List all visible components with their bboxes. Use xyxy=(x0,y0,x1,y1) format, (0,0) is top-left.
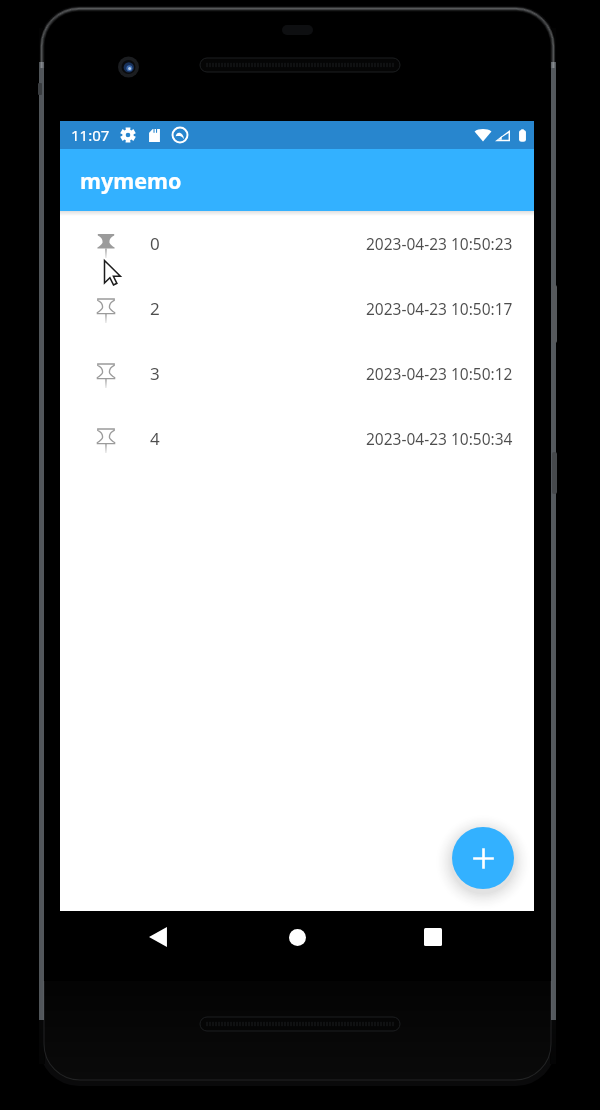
staticText: 0 xyxy=(150,232,160,255)
button[interactable]: 4 xyxy=(60,406,534,471)
button[interactable]: 3 xyxy=(60,341,534,406)
button[interactable]: Recent apps xyxy=(405,909,461,965)
staticText: 2 xyxy=(150,297,160,320)
staticText: 2023-04-23 10:50:23 xyxy=(366,233,513,254)
staticText: 2023-04-23 10:50:34 xyxy=(366,428,513,449)
staticText: 4 xyxy=(150,427,160,450)
button[interactable]: 0 xyxy=(60,211,534,276)
staticText: 2023-04-23 10:50:17 xyxy=(366,298,513,319)
staticText: 2023-04-23 10:50:12 xyxy=(366,363,513,384)
staticText: 3 xyxy=(150,362,160,385)
button[interactable]: Home xyxy=(269,909,325,965)
button[interactable]: Add memo xyxy=(452,827,514,889)
button[interactable]: Back xyxy=(131,909,187,965)
button[interactable]: 2 xyxy=(60,276,534,341)
staticText: mymemo xyxy=(80,166,182,195)
staticText: 11:07 xyxy=(71,125,110,145)
